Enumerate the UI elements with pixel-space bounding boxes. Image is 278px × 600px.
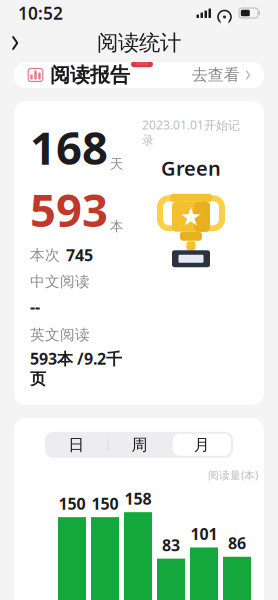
staticText: 去查看 — [192, 65, 240, 85]
staticText: 月 — [194, 435, 210, 455]
staticText: 745 — [66, 244, 93, 266]
staticText: 101 — [190, 523, 217, 544]
staticText: 168 — [30, 117, 108, 177]
button[interactable]: 返回 — [0, 28, 30, 58]
staticText: 158 — [124, 488, 151, 509]
button[interactable]: 月 — [171, 432, 233, 458]
staticText: 86 — [228, 532, 246, 554]
staticText: 中文阅读 — [30, 273, 90, 291]
staticText: 10:52 — [18, 1, 63, 24]
staticText: 阅读统计 — [97, 30, 181, 56]
staticText: 日 — [68, 435, 84, 455]
staticText: Green — [161, 155, 221, 181]
staticText: ★ — [179, 202, 202, 231]
staticText: 天 — [110, 156, 123, 172]
staticText: 英文阅读 — [30, 326, 90, 344]
staticText: -- — [30, 296, 40, 317]
staticText: 150 — [91, 493, 118, 514]
button[interactable]: 阅读报告 — [14, 62, 264, 88]
staticText: 593 — [30, 179, 108, 239]
staticText: 周 — [131, 435, 147, 455]
button[interactable]: 日 — [45, 434, 107, 456]
staticText: 2023.01.01开始记录 — [142, 117, 240, 148]
staticText: 本次 — [30, 246, 60, 264]
staticText: 593本 /9.2千页 — [30, 348, 122, 389]
staticText: 阅读量(本) — [208, 468, 258, 482]
staticText: 150 — [58, 493, 85, 514]
staticText: 83 — [162, 534, 180, 556]
staticText: 阅读报告 — [50, 63, 130, 87]
staticText: 本 — [110, 218, 123, 234]
button[interactable]: 周 — [108, 434, 171, 456]
